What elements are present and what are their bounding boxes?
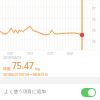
button[interactable]: よく使う項目に追加 (0, 84, 100, 100)
staticText: 8/01 (67, 52, 74, 56)
staticText: 2018/08/01 (3, 55, 22, 60)
staticText: 体重 (3, 66, 11, 71)
staticText: 7/21 (47, 52, 54, 56)
staticText: 75.47 (12, 60, 34, 72)
staticText: 7/01 (7, 52, 14, 56)
staticText: 7/11 (27, 52, 34, 56)
staticText: 2018年07月01日〜08月01日 (3, 72, 49, 77)
staticText: kg (35, 66, 40, 71)
staticText: よく使う項目に追加 (4, 89, 46, 95)
staticText: 75 (92, 29, 96, 33)
staticText: 76 (92, 18, 96, 22)
staticText: 77 (92, 7, 96, 11)
staticText: 74 (92, 40, 96, 44)
